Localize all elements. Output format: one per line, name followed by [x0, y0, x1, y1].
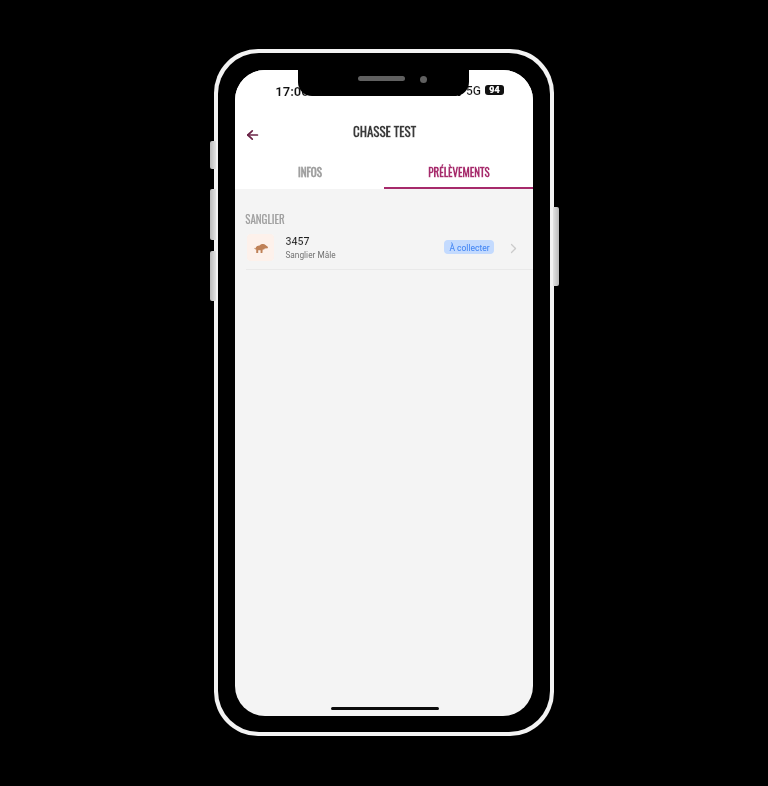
staticText: CHASSE TEST [353, 121, 416, 140]
staticText: PRÉLÈVEMENTS [428, 164, 490, 180]
button[interactable]: PRÉLÈVEMENTS [384, 152, 533, 189]
staticText: Sanglier Mâle [285, 250, 336, 260]
button[interactable]: Back [235, 117, 270, 153]
staticText: À collecter [449, 243, 490, 253]
button[interactable]: 3457 [235, 232, 533, 270]
staticText: SANGLIER [245, 211, 285, 227]
button[interactable]: À collecter [444, 240, 494, 254]
button[interactable]: INFOS [235, 152, 384, 189]
staticText: 3457 [285, 235, 310, 247]
staticText: 17:06 [275, 84, 309, 99]
other: Open details [511, 244, 516, 253]
staticText: 5G [466, 84, 481, 98]
staticText: 94 [489, 85, 500, 95]
staticText: INFOS [298, 164, 322, 180]
